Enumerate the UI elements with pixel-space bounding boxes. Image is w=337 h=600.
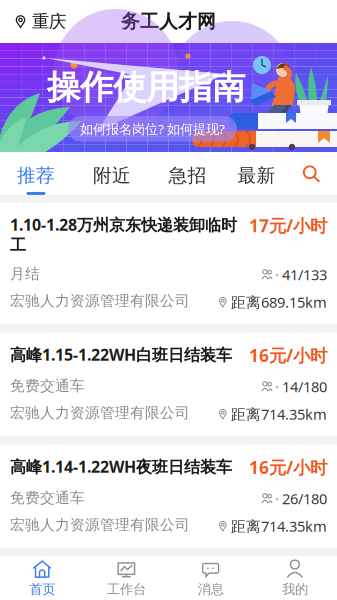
button[interactable]: 附近 [72, 152, 152, 195]
staticText: · [275, 377, 279, 396]
staticText: 务工人才网 [121, 10, 216, 33]
staticText: 推荐 [17, 164, 55, 187]
staticText: 月结 [10, 265, 40, 283]
staticText: 14元/小时 [249, 568, 327, 591]
staticText: 41/133 [282, 265, 327, 284]
staticText: 免费交通车 [10, 489, 85, 507]
button[interactable]: 最新 [223, 152, 290, 195]
staticText: 高峰1.14-1.22WH夜班日结装车 [10, 456, 232, 477]
staticText: 我的 [282, 581, 308, 597]
staticText: 距离714.35km [231, 404, 327, 424]
button[interactable]: 高峰1.14-1.22WH夜班日结装车 [0, 445, 337, 548]
staticText: 附近 [93, 164, 131, 187]
staticText: 免费交通车 [10, 377, 85, 395]
staticText: · [275, 489, 279, 508]
staticText: 工作台 [107, 581, 146, 597]
staticText: 26/180 [282, 489, 327, 508]
staticText: 高峰1.15-1.22WH白班日结装车 [10, 344, 232, 365]
button[interactable]: 推荐 [0, 152, 72, 195]
staticText: 距离714.35km [231, 516, 327, 536]
staticText: 操作使用指南 [47, 67, 245, 108]
staticText: 如何报名岗位? 如何提现? [80, 120, 225, 138]
staticText: 22年1.5-1.31胡家湾顺丰夜班日结 [10, 568, 230, 600]
staticText: 最新 [237, 164, 275, 187]
staticText: · [275, 265, 279, 284]
staticText: 17元/小时 [249, 214, 327, 237]
staticText: 距离689.15km [231, 292, 327, 312]
button[interactable]: 22年1.5-1.31胡家湾顺丰夜班日结 [0, 557, 337, 600]
staticText: 宏驰人力资源管理有限公司 [10, 404, 190, 422]
staticText: 急招 [168, 164, 206, 187]
button[interactable]: 重庆 [0, 2, 76, 41]
staticText: 重庆 [32, 11, 66, 32]
button[interactable]: 急招 [152, 152, 223, 195]
staticText: 消息 [198, 581, 224, 597]
staticText: 宏驰人力资源管理有限公司 [10, 516, 190, 534]
button[interactable]: 工作台 [84, 554, 168, 600]
staticText: 16元/小时 [249, 456, 327, 479]
staticText: 1.10-1.28万州京东快递装卸临时工 [10, 214, 237, 255]
staticText: 14/180 [282, 377, 327, 396]
staticText: 16元/小时 [249, 344, 327, 367]
button[interactable]: 我的 [253, 554, 337, 600]
staticText: 首页 [29, 581, 55, 597]
button[interactable]: 首页 [0, 554, 84, 600]
button[interactable]: 消息 [168, 554, 253, 600]
button[interactable]: 高峰1.15-1.22WH白班日结装车 [0, 333, 337, 436]
staticText: 宏驰人力资源管理有限公司 [10, 292, 190, 310]
button[interactable]: 搜索 [292, 152, 337, 194]
button[interactable]: 1.10-1.28万州京东快递装卸临时工 [0, 203, 337, 324]
